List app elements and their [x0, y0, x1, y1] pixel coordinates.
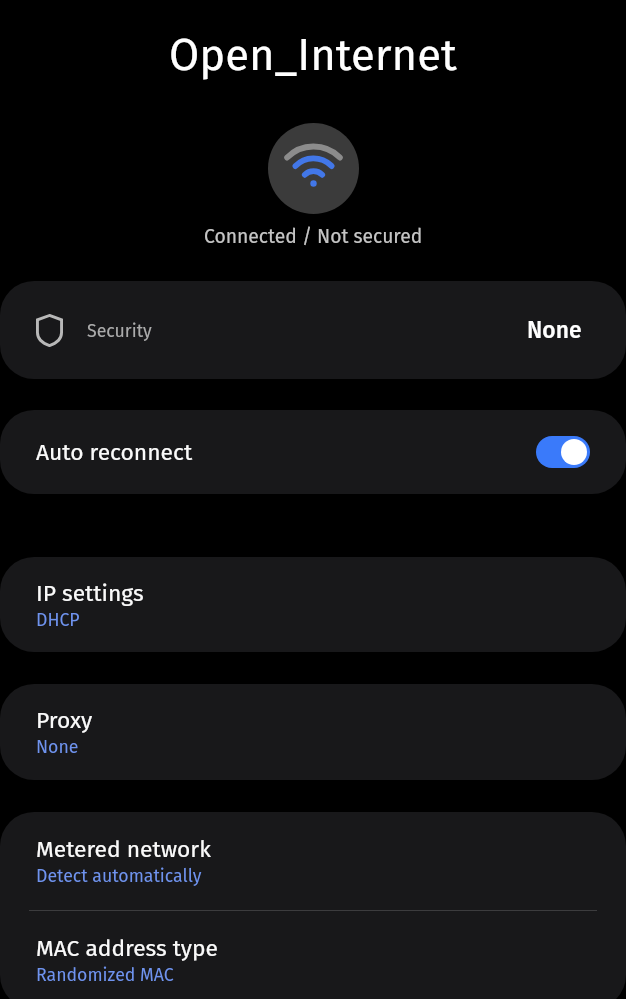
staticText: Open_Internet	[169, 29, 457, 81]
button[interactable]: Proxy	[0, 684, 626, 780]
button[interactable]: Security	[0, 281, 626, 379]
staticText: DHCP	[36, 609, 80, 630]
staticText: Randomized MAC	[36, 964, 174, 985]
staticText: Connected / Not secured	[204, 225, 423, 248]
staticText: None	[527, 317, 582, 344]
button[interactable]: MAC address type	[0, 911, 626, 999]
button[interactable]: Auto reconnect	[0, 410, 626, 494]
staticText: Detect automatically	[36, 865, 202, 886]
button[interactable]: Auto reconnect toggle	[536, 436, 590, 468]
staticText: Auto reconnect	[36, 439, 193, 466]
staticText: IP settings	[36, 580, 144, 607]
button[interactable]: IP settings	[0, 557, 626, 652]
button[interactable]: Metered network	[0, 812, 626, 910]
staticText: Metered network	[36, 836, 211, 863]
staticText: MAC address type	[36, 935, 218, 962]
staticText: None	[36, 736, 79, 757]
staticText: Proxy	[36, 707, 93, 734]
staticText: Security	[87, 320, 152, 341]
